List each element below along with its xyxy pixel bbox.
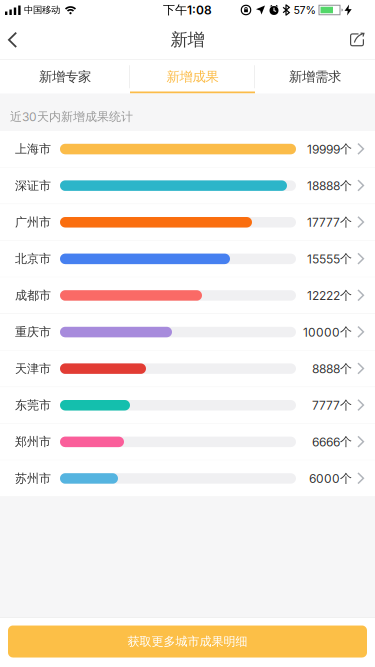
button[interactable]: 成都市 — [0, 277, 375, 314]
staticText: 7777个 — [312, 398, 352, 413]
staticText: 新增需求 — [289, 69, 341, 85]
staticText: 近30天内新增成果统计 — [10, 109, 133, 124]
staticText: 重庆市 — [15, 325, 51, 339]
button[interactable]: 苏州市 — [0, 460, 375, 497]
button[interactable]: 上海市 — [0, 131, 375, 168]
staticText: 获取更多城市成果明细 — [127, 634, 247, 649]
button[interactable]: 天津市 — [0, 351, 375, 387]
staticText: 苏州市 — [15, 471, 51, 486]
staticText: 下午1:08 — [163, 3, 212, 17]
staticText: 上海市 — [15, 142, 51, 156]
staticText: 中国移动 — [24, 4, 60, 16]
staticText: 6666个 — [312, 434, 352, 449]
button[interactable]: 广州市 — [0, 204, 375, 241]
staticText: 10000个 — [303, 325, 352, 339]
button[interactable]: 获取更多城市成果明细 — [8, 625, 367, 657]
button[interactable]: Share — [336, 20, 375, 60]
button[interactable]: Back — [0, 20, 35, 60]
button[interactable]: 新增成果 — [130, 60, 255, 93]
staticText: 新增专家 — [39, 69, 91, 85]
staticText: 15555个 — [307, 251, 352, 266]
button[interactable]: 重庆市 — [0, 314, 375, 351]
staticText: 8888个 — [312, 361, 352, 376]
staticText: 17777个 — [307, 215, 352, 230]
staticText: 6000个 — [309, 471, 352, 486]
staticText: 新增成果 — [166, 69, 218, 85]
button[interactable]: 新增需求 — [255, 60, 375, 93]
staticText: 12222个 — [307, 288, 352, 303]
button[interactable]: 新增专家 — [0, 60, 130, 93]
staticText: 天津市 — [15, 361, 51, 376]
staticText: 东莞市 — [15, 398, 51, 413]
staticText: 成都市 — [15, 288, 51, 303]
staticText: 北京市 — [15, 251, 51, 266]
staticText: 18888个 — [307, 178, 352, 193]
staticText: 广州市 — [15, 215, 51, 230]
button[interactable]: 北京市 — [0, 241, 375, 277]
staticText: 郑州市 — [15, 434, 51, 449]
staticText: 57% — [293, 4, 315, 16]
staticText: 19999个 — [307, 142, 352, 156]
staticText: 新增 — [170, 29, 204, 50]
button[interactable]: 东莞市 — [0, 387, 375, 424]
button[interactable]: 郑州市 — [0, 424, 375, 460]
button[interactable]: 深证市 — [0, 168, 375, 204]
staticText: 深证市 — [15, 178, 51, 193]
